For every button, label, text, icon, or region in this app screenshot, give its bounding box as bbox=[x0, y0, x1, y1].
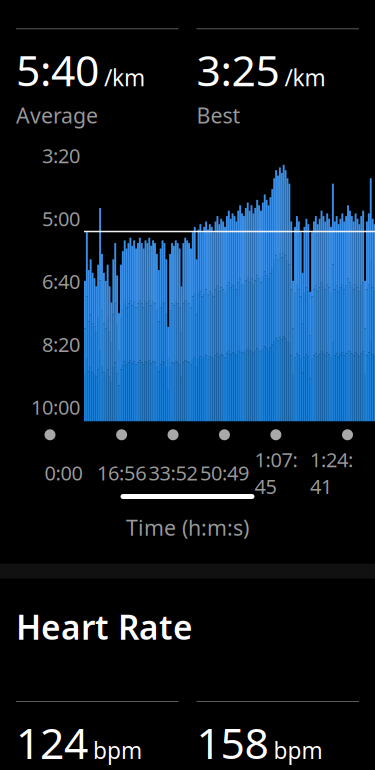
staticText: /km bbox=[284, 62, 325, 92]
staticText: 124 bbox=[16, 714, 88, 770]
staticText: bpm bbox=[273, 735, 322, 765]
staticText: 16:56 bbox=[97, 460, 146, 486]
staticText: bpm bbox=[93, 735, 142, 765]
staticText: 3:25 bbox=[196, 41, 279, 98]
staticText: /km bbox=[104, 62, 145, 92]
staticText: 10:00 bbox=[31, 394, 80, 420]
staticText: 1:24:41 bbox=[310, 446, 353, 499]
staticText: 8:20 bbox=[42, 331, 80, 357]
staticText: 1:07:45 bbox=[254, 446, 297, 499]
staticText: 158 bbox=[196, 714, 268, 770]
staticText: 5:00 bbox=[42, 205, 80, 232]
staticText: 50:49 bbox=[200, 460, 249, 486]
staticText: Heart Rate bbox=[16, 605, 193, 649]
staticText: 5:40 bbox=[16, 41, 99, 98]
staticText: Average bbox=[16, 101, 98, 129]
staticText: 3:20 bbox=[42, 142, 80, 169]
staticText: 6:40 bbox=[42, 268, 80, 295]
staticText: 33:52 bbox=[148, 460, 197, 486]
staticText: 0:00 bbox=[44, 460, 82, 486]
staticText: Time (h:m:s) bbox=[126, 513, 249, 542]
staticText: Best bbox=[196, 101, 240, 129]
